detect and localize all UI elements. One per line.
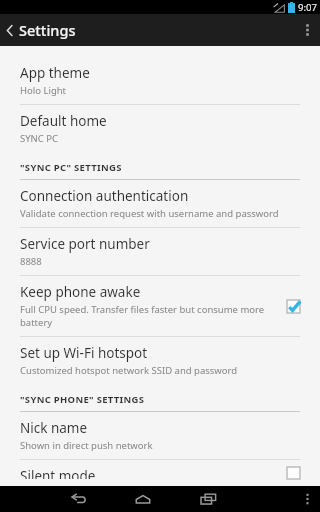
- staticText: "SYNC PHONE" SETTINGS: [20, 393, 145, 406]
- button[interactable]: Settings: [0, 14, 86, 46]
- staticText: 9:07: [298, 1, 317, 14]
- button[interactable]: Keep phone awake: [280, 293, 306, 319]
- button[interactable]: Keep phone awake: [0, 276, 320, 336]
- button[interactable]: Back: [58, 486, 98, 512]
- staticText: Customized hotspot network SSID and pass…: [20, 364, 238, 377]
- button[interactable]: Default home: [0, 105, 320, 152]
- button[interactable]: More options: [294, 14, 320, 46]
- button[interactable]: Connection authentication: [0, 180, 320, 227]
- button[interactable]: Set up Wi-Fi hotspot: [0, 337, 320, 384]
- staticText: 8888: [20, 255, 42, 268]
- button[interactable]: Silent mode: [0, 460, 320, 486]
- staticText: App theme: [20, 64, 90, 82]
- button[interactable]: Nick name: [0, 412, 320, 459]
- staticText: Holo Light: [20, 84, 67, 97]
- staticText: Default home: [20, 112, 107, 130]
- button[interactable]: Service port number: [0, 228, 320, 275]
- staticText: Connection authentication: [20, 187, 189, 205]
- button[interactable]: Home: [123, 486, 163, 512]
- staticText: Silent mode: [20, 467, 96, 479]
- staticText: Settings: [19, 20, 76, 40]
- button[interactable]: App theme: [0, 57, 320, 104]
- staticText: Service port number: [20, 235, 150, 253]
- staticText: "SYNC PC" SETTINGS: [20, 161, 122, 174]
- staticText: Validate connection request with usernam…: [20, 207, 279, 220]
- button[interactable]: More options: [294, 486, 320, 512]
- staticText: Nick name: [20, 419, 88, 437]
- staticText: Shown in direct push network: [20, 439, 153, 452]
- button[interactable]: Recent apps: [188, 486, 228, 512]
- button[interactable]: Silent mode: [280, 467, 306, 479]
- staticText: Full CPU speed. Transfer files faster bu…: [20, 303, 272, 329]
- staticText: Keep phone awake: [20, 283, 141, 301]
- staticText: SYNC PC: [20, 132, 59, 145]
- staticText: Set up Wi-Fi hotspot: [20, 344, 148, 362]
